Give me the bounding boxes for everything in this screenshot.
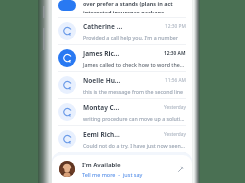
staticText: this is the message from the second line (83, 88, 184, 95)
staticText: Yesterday (164, 131, 186, 138)
staticText: Provided a call help you. I'm a number (83, 34, 178, 41)
staticText: over prefer a stands (plans in act (83, 0, 173, 7)
staticText: 12:30 PM (165, 23, 186, 30)
button[interactable]: Montay Carroll (52, 99, 192, 125)
button[interactable]: James Richard (52, 45, 192, 71)
button[interactable]: Catherine Gates (52, 18, 192, 44)
staticText: Montay Carroll (83, 103, 123, 112)
button[interactable]: over prefer a stands (plans in act (52, 0, 192, 13)
button[interactable]: I'm Available (52, 155, 192, 183)
button[interactable]: Edit (176, 165, 185, 174)
staticText: James Richard (83, 49, 123, 58)
staticText: Tell me more - just say (82, 171, 143, 178)
staticText: Eemi Richard (83, 130, 123, 139)
staticText: 12:30 AM (164, 50, 186, 57)
staticText: writing procedure can move up a solution (83, 115, 186, 122)
staticText: James called to check how to word the... (83, 61, 185, 68)
staticText: I'm Available (82, 161, 121, 169)
staticText: Could not do a try. I have just now seen… (83, 142, 186, 149)
staticText: Yesterday (164, 104, 186, 111)
staticText: Catherine Gates (83, 22, 124, 31)
staticText: interested insurance package. (83, 9, 166, 13)
staticText: 11:56 AM (165, 77, 186, 84)
button[interactable]: Eemi Richard (52, 126, 192, 152)
staticText: Noelle Huffman (83, 76, 124, 85)
button[interactable]: Noelle Huffman (52, 72, 192, 98)
